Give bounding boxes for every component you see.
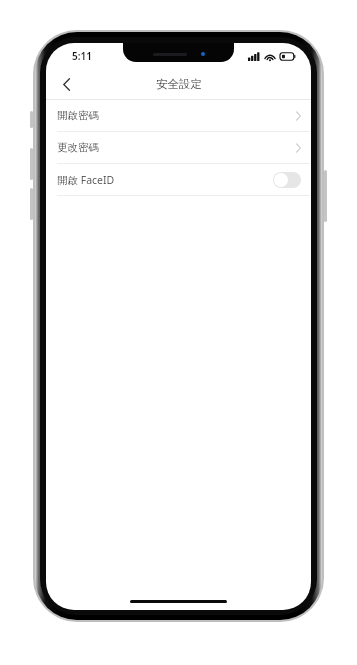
staticText: 開啟密碼 [57,109,296,122]
button[interactable]: Back [46,69,86,99]
button[interactable]: Enable FaceID toggle [273,172,301,188]
staticText: 更改密碼 [57,141,296,154]
staticText: 安全設定 [156,77,202,91]
button[interactable]: 開啟密碼 [46,100,311,131]
staticText: 開啟 FaceID [57,173,273,187]
button[interactable]: 開啟 FaceID [46,164,311,195]
staticText: 5:11 [72,49,92,63]
button[interactable]: 更改密碼 [46,132,311,163]
